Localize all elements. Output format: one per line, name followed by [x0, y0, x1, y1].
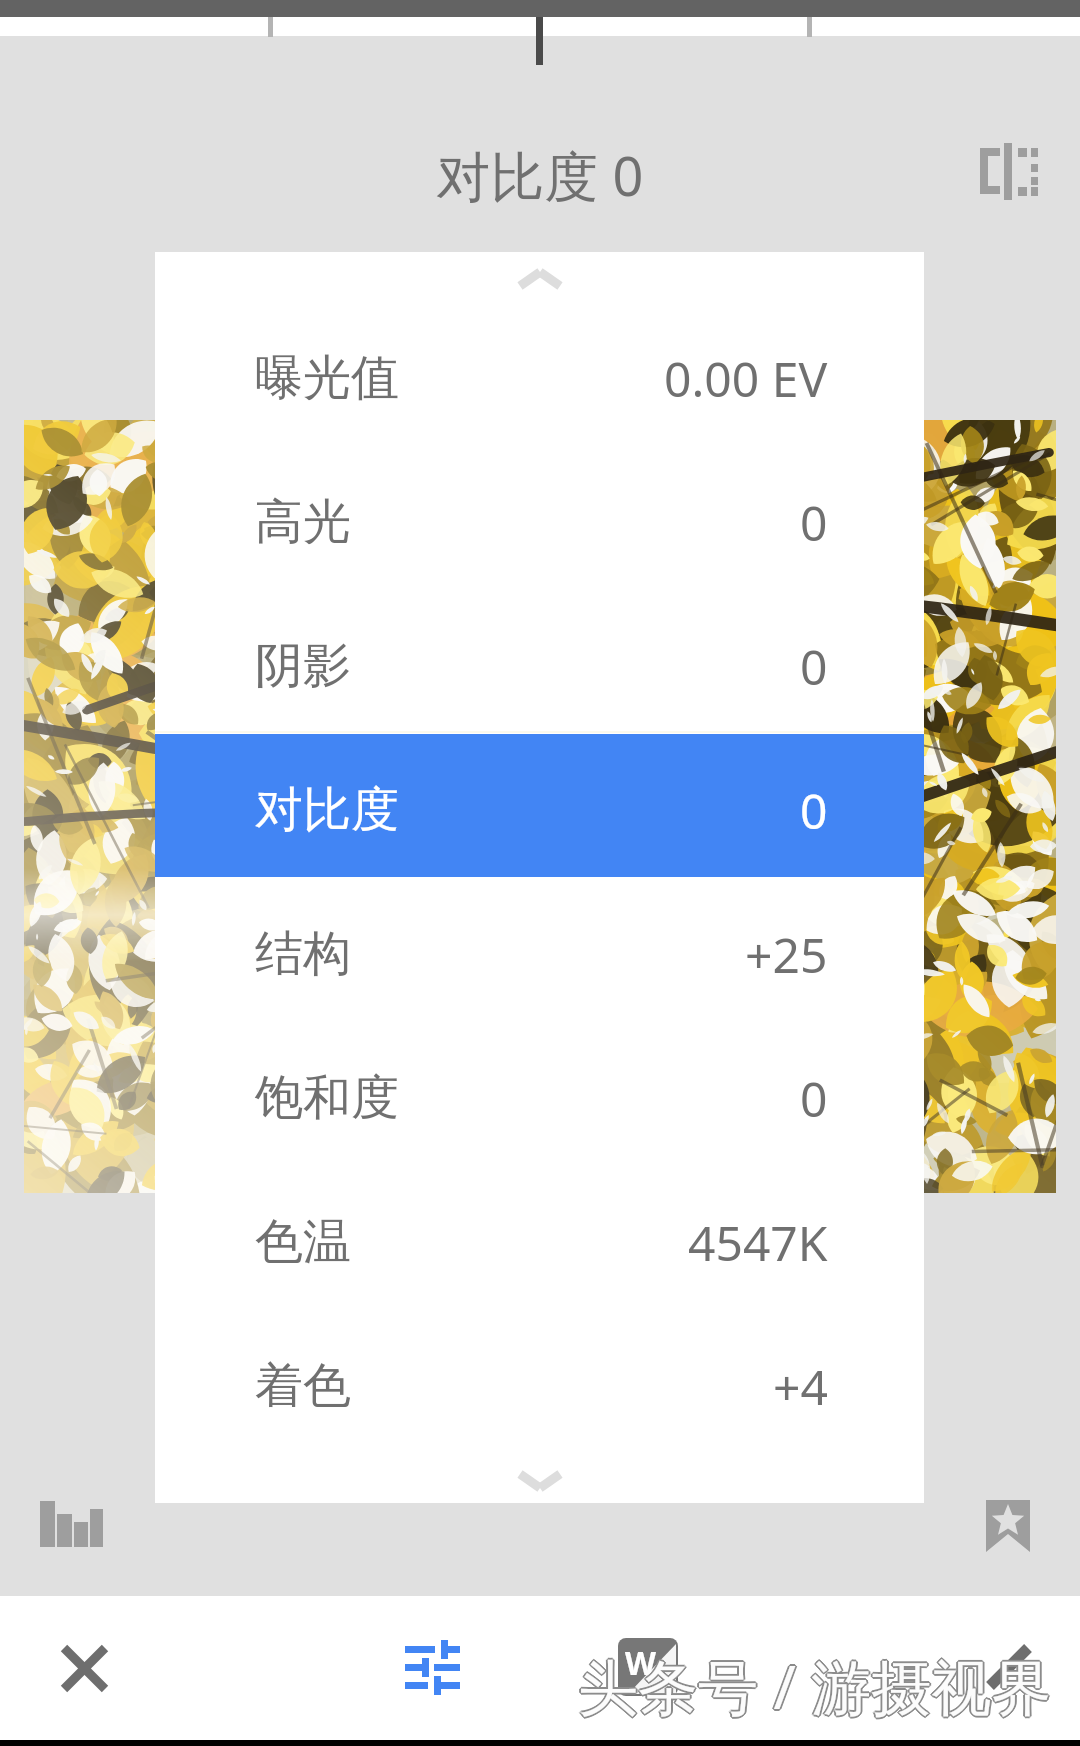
button[interactable]: 对比度 — [155, 738, 924, 882]
staticText: 头条号 / 游摄视界 — [578, 1647, 1052, 1729]
staticText: 头条号 / 游摄视界 — [578, 1645, 1052, 1727]
button[interactable]: Scroll up — [155, 252, 924, 306]
staticText: 阴影 — [255, 636, 351, 696]
staticText: 头条号 / 游摄视界 — [578, 1643, 1052, 1725]
button[interactable]: 阴影 — [155, 594, 924, 738]
staticText: +25 — [745, 922, 828, 987]
staticText: 曝光值 — [255, 348, 399, 408]
staticText: 头条号 / 游摄视界 — [579, 1646, 1053, 1728]
staticText: 饱和度 — [255, 1068, 399, 1128]
staticText: 0.00 EV — [664, 346, 828, 411]
staticText: 头条号 / 游摄视界 — [579, 1644, 1053, 1726]
staticText: +4 — [773, 1354, 828, 1419]
staticText: 0 — [800, 778, 828, 843]
staticText: 0 — [800, 634, 828, 699]
button[interactable]: Scroll down — [155, 1458, 924, 1503]
button[interactable]: Histogram — [38, 1492, 104, 1558]
staticText: 4547K — [688, 1210, 828, 1275]
staticText: 0 — [800, 490, 828, 555]
button[interactable]: Edit — [978, 1638, 1038, 1698]
staticText: 着色 — [255, 1356, 351, 1416]
staticText: 头条号 / 游摄视界 — [577, 1646, 1051, 1728]
button[interactable]: 结构 — [155, 882, 924, 1026]
button[interactable]: 饱和度 — [155, 1026, 924, 1170]
button[interactable]: 色温 — [155, 1170, 924, 1314]
staticText: 高光 — [255, 492, 351, 552]
staticText: 对比度 — [255, 780, 399, 840]
staticText: 结构 — [255, 924, 351, 984]
staticText: 头条号 / 游摄视界 — [580, 1645, 1054, 1727]
staticText: W — [625, 1641, 656, 1685]
staticText: 头条号 / 游摄视界 — [576, 1645, 1050, 1727]
button[interactable]: 着色 — [155, 1314, 924, 1458]
staticText: 色温 — [255, 1212, 351, 1272]
button[interactable]: Compare — [976, 140, 1040, 204]
button[interactable]: Tune — [405, 1643, 460, 1699]
staticText: 对比度 0 — [0, 138, 1080, 212]
staticText: 0 — [800, 1066, 828, 1131]
button[interactable]: Looks — [980, 1490, 1040, 1550]
button[interactable]: Cancel — [54, 1638, 115, 1699]
staticText: 头条号 / 游摄视界 — [577, 1644, 1051, 1726]
button[interactable]: 高光 — [155, 450, 924, 594]
button[interactable]: 曝光值 — [155, 306, 924, 450]
